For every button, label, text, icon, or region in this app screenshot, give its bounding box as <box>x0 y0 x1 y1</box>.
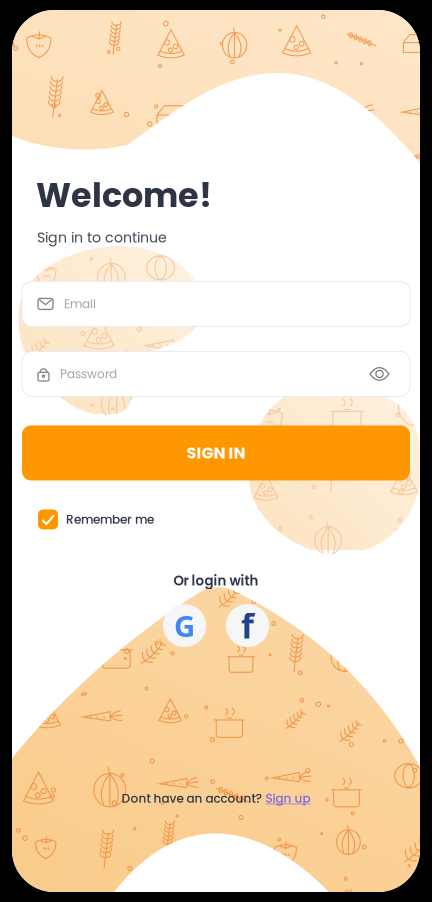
button[interactable]: Dont have an account? <box>121 790 310 807</box>
staticText: SIGN IN <box>186 442 245 464</box>
staticText: G <box>174 606 195 645</box>
button[interactable]: Sign in with Facebook <box>226 604 269 647</box>
staticText: Welcome! <box>36 172 212 219</box>
button[interactable]: Sign in with Google <box>163 604 206 647</box>
staticText: Or login with <box>173 571 258 590</box>
staticText: Sign in to continue <box>37 228 167 247</box>
staticText: Password <box>60 366 117 382</box>
staticText: Email <box>64 296 96 312</box>
staticText: Remember me <box>66 511 154 528</box>
staticText: Dont have an account? <box>121 790 261 807</box>
staticText: Sign up <box>265 790 310 807</box>
button[interactable]: Remember me <box>38 509 154 529</box>
button[interactable]: SIGN IN <box>22 425 410 480</box>
staticText: f <box>241 603 254 648</box>
